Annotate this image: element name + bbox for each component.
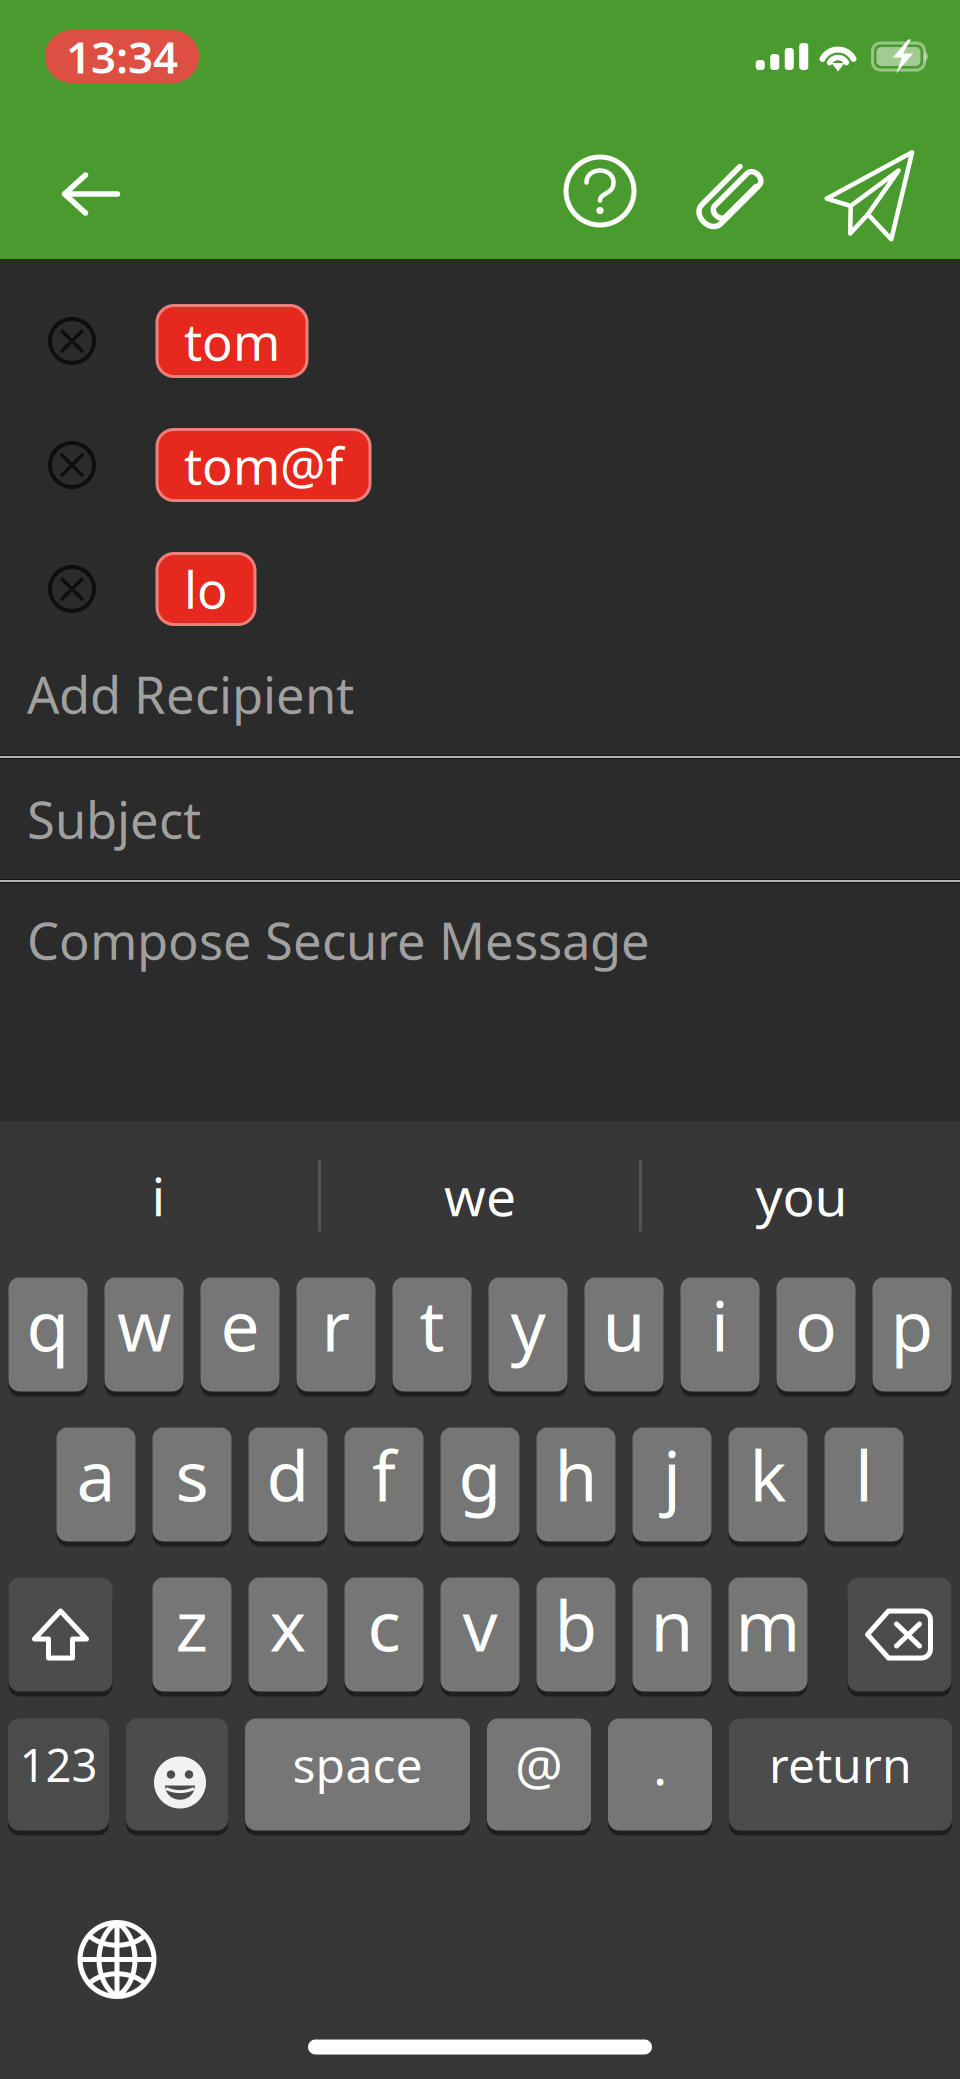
button[interactable]: v [440,1577,519,1691]
button[interactable]: we [321,1155,639,1235]
staticText: @ [515,1729,563,1800]
button[interactable]: Help [550,146,650,242]
staticText: m [735,1578,800,1671]
button[interactable]: f [344,1427,423,1541]
staticText: h [554,1428,597,1521]
staticText: l [855,1428,873,1521]
staticText: Compose Secure Message [27,906,650,974]
button[interactable]: q [8,1277,87,1391]
button[interactable]: i [680,1277,759,1391]
button[interactable]: lo [157,553,255,624]
staticText: p [890,1278,933,1371]
staticText: tom [184,307,280,375]
staticText: Add Recipient [27,660,354,728]
button[interactable]: n [632,1577,711,1691]
button[interactable]: a [56,1427,135,1541]
button[interactable]: o [776,1277,855,1391]
staticText: t [419,1278,444,1371]
button[interactable]: p [872,1277,951,1391]
button[interactable]: h [536,1427,615,1541]
staticText: e [220,1278,259,1371]
staticText: tom@f [184,431,343,499]
button[interactable]: Shift [8,1577,112,1691]
button[interactable]: @ [487,1718,591,1830]
staticText: i [151,1160,165,1231]
button[interactable]: Emoji [126,1718,228,1830]
staticText: we [444,1160,516,1231]
staticText: i [711,1278,729,1371]
staticText: 123 [19,1734,97,1795]
staticText: v [462,1578,497,1671]
button[interactable]: 123 [8,1718,109,1830]
staticText: d [266,1428,309,1521]
staticText: k [749,1428,786,1521]
button[interactable]: i [0,1155,318,1235]
staticText: space [292,1733,422,1796]
button[interactable]: d [248,1427,327,1541]
staticText: z [175,1578,208,1671]
staticText: y [510,1278,545,1371]
staticText: r [321,1278,350,1371]
button[interactable]: Remove lo [24,539,120,639]
staticText: q [26,1278,69,1371]
staticText: a [76,1428,115,1521]
staticText: 13:34 [66,27,178,86]
button[interactable]: tom@f [157,429,370,500]
button[interactable]: b [536,1577,615,1691]
staticText: o [795,1278,837,1371]
button[interactable]: w [104,1277,183,1391]
button[interactable]: x [248,1577,327,1691]
button[interactable]: Attach [691,146,770,242]
button[interactable]: Send [821,146,914,242]
button[interactable]: Delete [847,1577,951,1691]
button[interactable]: space [245,1718,470,1830]
staticText: f [372,1428,396,1521]
button[interactable]: y [488,1277,567,1391]
button[interactable]: g [440,1427,519,1541]
staticText: s [175,1428,208,1521]
staticText: b [554,1578,597,1671]
button[interactable]: m [728,1577,807,1691]
button[interactable]: u [584,1277,663,1391]
button[interactable]: k [728,1427,807,1541]
staticText: return [769,1733,912,1796]
button[interactable]: j [632,1427,711,1541]
staticText: w [117,1278,171,1371]
staticText: Subject [27,785,201,853]
button[interactable]: s [152,1427,231,1541]
button[interactable]: tom [157,305,307,376]
button[interactable]: . [608,1718,712,1830]
staticText: n [650,1578,693,1671]
staticText: g [458,1428,501,1521]
button[interactable]: z [152,1577,231,1691]
button[interactable]: l [824,1427,903,1541]
button[interactable]: Back [36,146,146,242]
staticText: c [367,1578,400,1671]
button[interactable]: Remove tom [24,291,120,391]
button[interactable]: r [296,1277,375,1391]
button[interactable]: c [344,1577,423,1691]
button[interactable]: Remove tom@f [24,415,120,515]
staticText: lo [184,555,228,623]
button[interactable]: Change keyboard [77,1919,157,1999]
staticText: x [269,1578,306,1671]
button[interactable]: return [729,1718,952,1830]
staticText: u [602,1278,645,1371]
button[interactable]: t [392,1277,471,1391]
staticText: you [755,1160,847,1231]
button[interactable]: e [200,1277,279,1391]
staticText: j [663,1428,681,1521]
staticText: . [653,1729,667,1800]
button[interactable]: you [642,1155,960,1235]
